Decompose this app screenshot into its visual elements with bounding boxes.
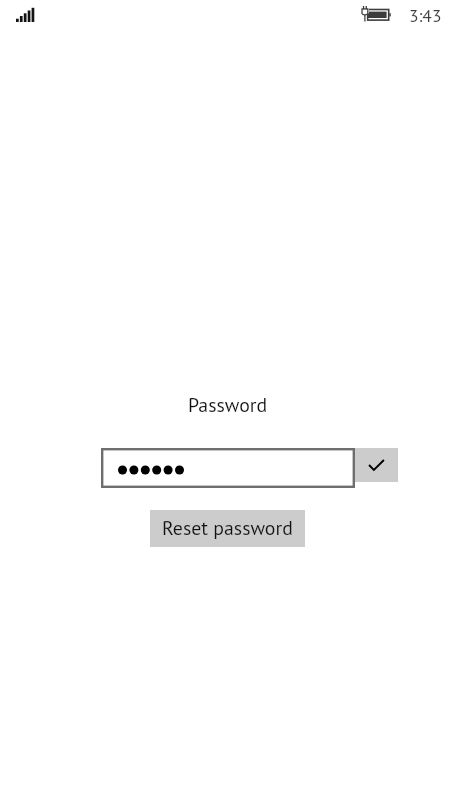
staticText: Password: [188, 392, 268, 418]
button[interactable]: Password field: [101, 448, 355, 488]
other: Signal strength: [16, 7, 35, 22]
button[interactable]: Reset password: [150, 510, 305, 547]
staticText: Reset password: [162, 515, 293, 541]
button[interactable]: Accept password: [355, 448, 398, 482]
staticText: 3:43: [409, 4, 442, 27]
other: Battery charging: [361, 4, 393, 24]
